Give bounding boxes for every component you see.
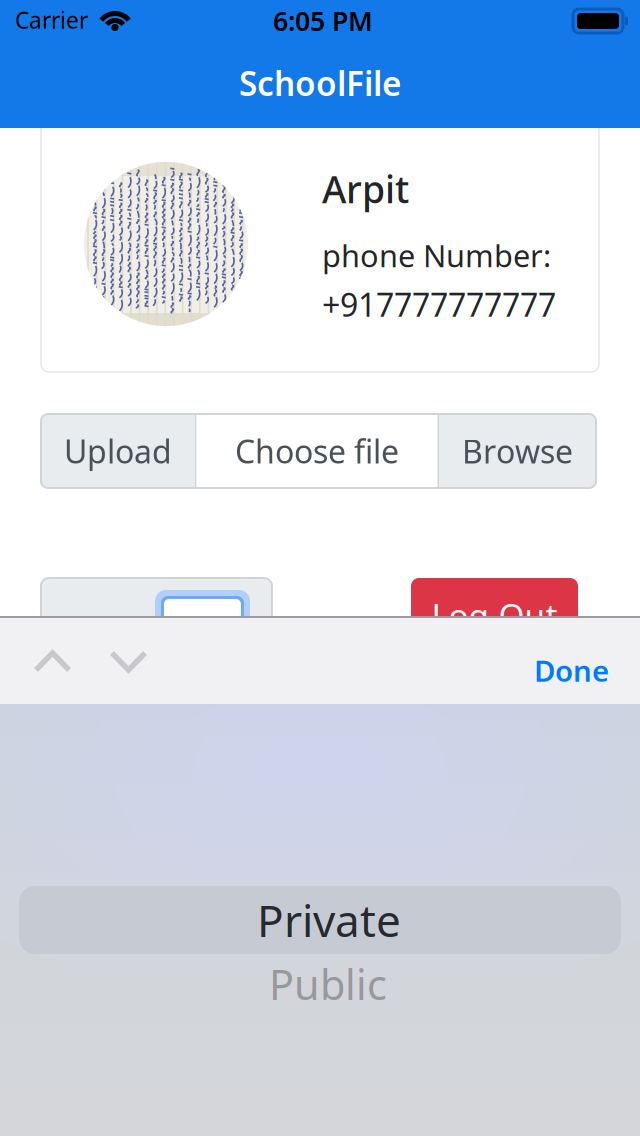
button[interactable]: Log Out: [411, 578, 578, 652]
button[interactable]: Upload: [41, 414, 195, 488]
button[interactable]: Choose file: [196, 414, 437, 488]
button[interactable]: Public: [27, 954, 629, 1014]
staticText: Upload: [64, 430, 172, 472]
staticText: Done: [534, 651, 609, 690]
staticText: +917777777777: [322, 283, 556, 325]
button[interactable]: Visibility: [41, 578, 272, 652]
staticText: Private: [257, 891, 401, 949]
staticText: Browse: [462, 430, 573, 472]
staticText: 6:05 PM: [273, 3, 373, 38]
staticText: SchoolFile: [239, 61, 402, 105]
staticText: phone Number:: [322, 235, 551, 276]
staticText: Log Out: [431, 593, 557, 637]
staticText: Public: [269, 957, 387, 1011]
staticText: Arpit: [322, 164, 409, 214]
staticText: Carrier: [15, 5, 88, 35]
button[interactable]: Previous field: [19, 635, 86, 688]
staticText: Choose file: [235, 430, 399, 472]
button[interactable]: Browse: [439, 414, 596, 488]
button[interactable]: Done: [518, 637, 625, 704]
button[interactable]: Private: [28, 886, 630, 954]
button[interactable]: Next field: [95, 635, 162, 688]
